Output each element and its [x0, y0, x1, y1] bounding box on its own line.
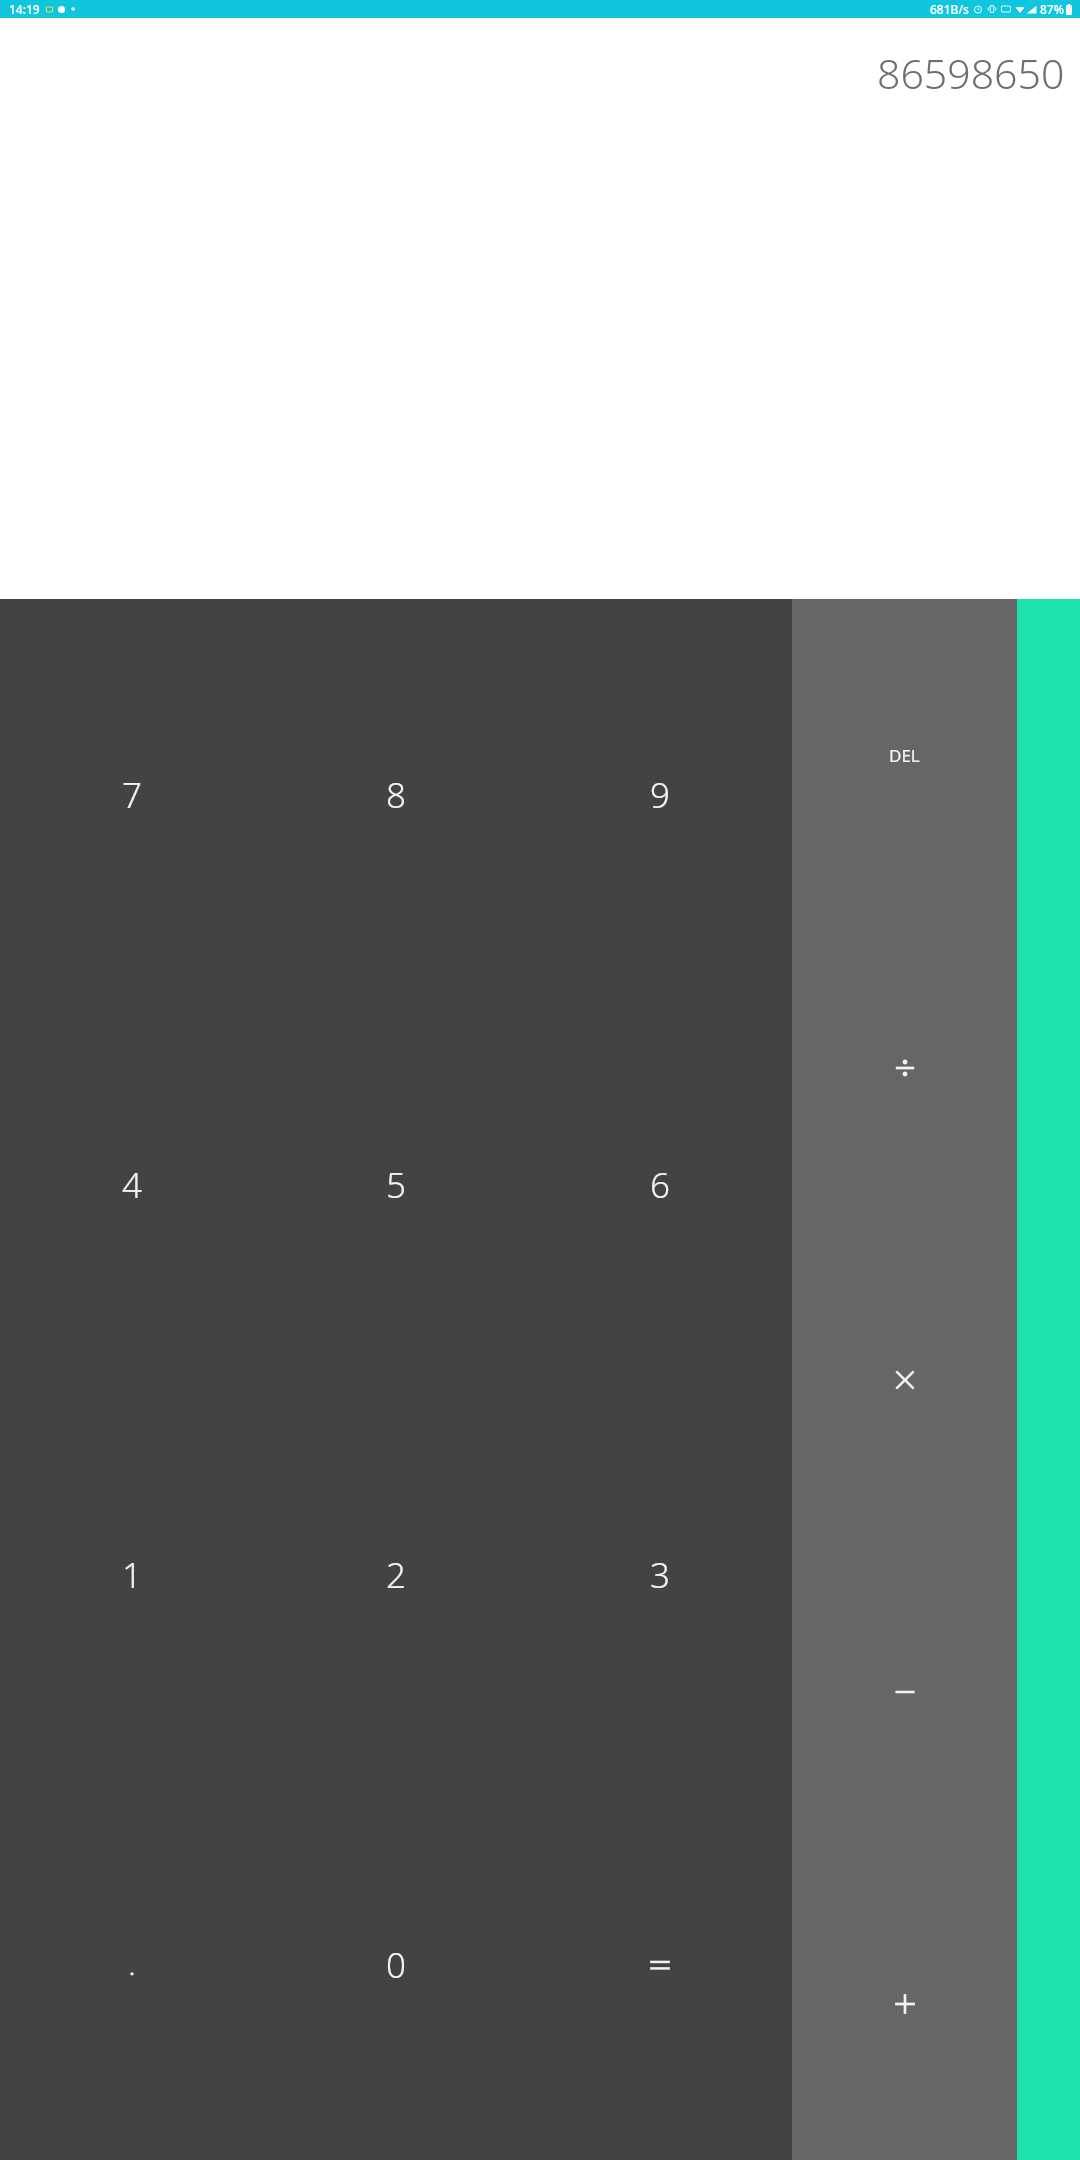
staticText: DEL — [889, 744, 920, 767]
staticText: 1 — [122, 1551, 142, 1599]
other: Decimal point — [115, 1948, 149, 1982]
button[interactable]: 5 — [264, 990, 528, 1380]
button[interactable]: 7 — [0, 599, 264, 990]
button[interactable]: 4 — [0, 990, 264, 1380]
staticText: 681B/s — [930, 1, 969, 17]
staticText: 87% — [1040, 1, 1064, 17]
button[interactable]: 9 — [528, 599, 792, 990]
staticText: 6 — [650, 1161, 670, 1209]
staticText: 14:19 — [9, 1, 40, 17]
button[interactable]: Delete — [792, 599, 1017, 912]
staticText: 5 — [386, 1161, 406, 1209]
button[interactable]: 6 — [528, 990, 792, 1380]
staticText: 2 — [386, 1551, 406, 1599]
button[interactable]: Equals — [528, 1770, 792, 2160]
staticText: 86598650 — [877, 45, 1065, 101]
staticText: 0 — [386, 1941, 406, 1989]
button[interactable]: 2 — [264, 1380, 528, 1770]
button[interactable]: Subtract — [792, 1536, 1017, 1848]
staticText: 7 — [122, 771, 142, 819]
other: Equals — [643, 1948, 677, 1982]
staticText: 8 — [386, 771, 406, 819]
button[interactable]: Divide — [792, 912, 1017, 1224]
staticText: 3 — [650, 1551, 670, 1599]
button[interactable]: 1 — [0, 1380, 264, 1770]
button[interactable]: 8 — [264, 599, 528, 990]
staticText: 9 — [650, 771, 670, 819]
button[interactable]: 3 — [528, 1380, 792, 1770]
staticText: 4 — [122, 1161, 142, 1209]
button[interactable]: Multiply — [792, 1224, 1017, 1536]
button[interactable]: 0 — [264, 1770, 528, 2160]
button[interactable]: Add — [792, 1848, 1017, 2160]
